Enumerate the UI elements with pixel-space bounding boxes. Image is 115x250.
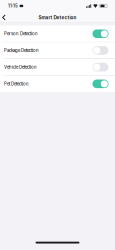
button[interactable]: Pet Detection [0,76,115,92]
button[interactable]: Back [0,13,9,22]
staticText: Vehicle Detection [4,65,37,70]
staticText: Smart Detection [38,15,76,20]
staticText: Pet Detection [4,81,29,86]
button[interactable]: Package Detection [0,42,115,59]
button[interactable]: Person Detection [0,26,115,42]
staticText: Person Detection [4,31,38,36]
staticText: Package Detection [4,48,39,53]
staticText: 11:15 [8,3,18,9]
button[interactable]: Vehicle Detection [0,59,115,75]
